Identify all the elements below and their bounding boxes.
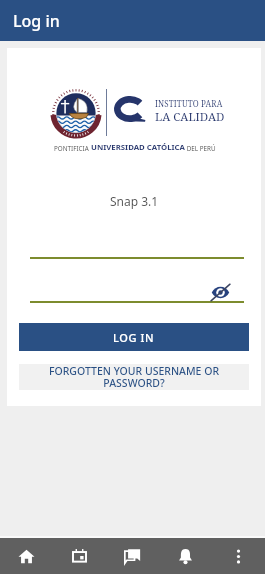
staticText: INSTITUTO PARA (155, 98, 223, 109)
staticText: Snap 3.1 (110, 193, 159, 209)
button[interactable]: Calendar (53, 538, 106, 574)
button[interactable]: LOG IN (19, 323, 249, 351)
button[interactable]: Show password (211, 283, 230, 302)
staticText: LOG IN (113, 330, 155, 345)
button[interactable]: More options (212, 538, 265, 574)
button[interactable]: FORGOTTEN YOUR USERNAME OR PASSWORD? (19, 364, 249, 390)
button[interactable]: Notifications (159, 538, 212, 574)
staticText: DEL PERÚ (185, 144, 216, 153)
button[interactable]: Messages (106, 538, 159, 574)
staticText: UNIVERSIDAD CATÓLICA (91, 142, 185, 153)
staticText: FORGOTTEN YOUR USERNAME OR PASSWORD? (44, 364, 224, 390)
staticText: Log in (13, 10, 60, 32)
staticText: PONTIFICIA (54, 144, 91, 153)
staticText: LA CALIDAD (155, 109, 225, 125)
button[interactable]: Home (0, 538, 53, 574)
